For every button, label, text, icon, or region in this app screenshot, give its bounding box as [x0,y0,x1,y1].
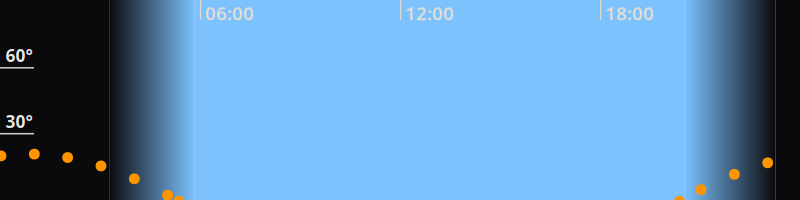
staticText: 60° [5,44,32,67]
staticText: 06:00 [205,1,254,25]
staticText: 18:00 [605,1,654,25]
staticText: 30° [5,110,32,133]
staticText: 12:00 [405,1,454,25]
